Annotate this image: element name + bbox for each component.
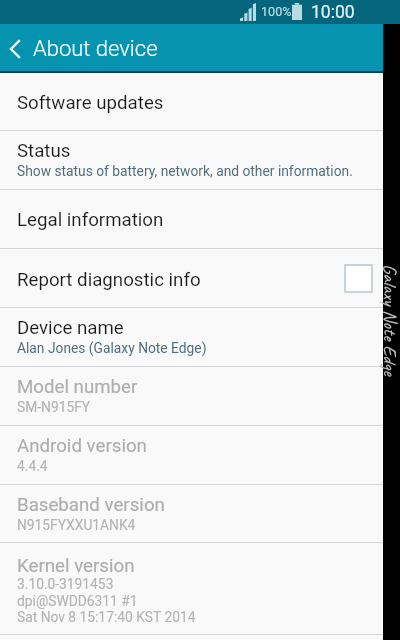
button[interactable]: Legal information — [0, 190, 400, 248]
button[interactable]: Kernel version — [0, 543, 400, 634]
staticText: Software updates — [17, 92, 164, 114]
staticText: 100% — [261, 4, 292, 19]
staticText: N915FYXXU1ANK4 — [17, 517, 136, 533]
staticText: 4.4.4 — [17, 458, 48, 474]
staticText: SM-N915FY — [17, 399, 91, 415]
button[interactable]: Android version — [0, 426, 400, 484]
staticText: Show status of battery, network, and oth… — [17, 163, 353, 179]
staticText: Baseband version — [17, 494, 165, 516]
staticText: Legal information — [17, 209, 164, 231]
staticText: dpi@SWDD6311 #1 — [17, 593, 138, 609]
staticText: Status — [17, 140, 71, 162]
staticText: 3.10.0-3191453 — [17, 576, 114, 592]
staticText: Sat Nov 8 15:17:40 KST 2014 — [17, 609, 196, 625]
staticText: About device — [33, 36, 158, 62]
button[interactable]: Software updates — [0, 73, 400, 130]
button[interactable]: Device name — [0, 308, 400, 366]
button[interactable]: Status — [0, 131, 400, 189]
staticText: Device name — [17, 317, 124, 339]
staticText: Alan Jones (Galaxy Note Edge) — [17, 340, 207, 356]
staticText: Android version — [17, 435, 147, 457]
staticText: 10:00 — [311, 2, 355, 23]
button[interactable]: Baseband version — [0, 485, 400, 542]
staticText: Report diagnostic info — [17, 269, 201, 291]
button[interactable]: Back — [0, 24, 158, 71]
button[interactable]: Model number — [0, 367, 400, 425]
button[interactable]: Report diagnostic info — [0, 249, 400, 307]
staticText: Kernel version — [17, 555, 135, 577]
staticText: Model number — [17, 376, 138, 398]
